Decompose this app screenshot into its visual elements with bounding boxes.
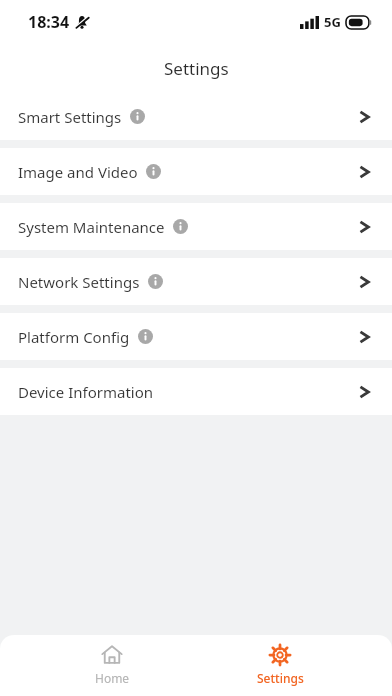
staticText: Platform Config: [18, 327, 130, 347]
staticText: Settings: [257, 670, 304, 686]
staticText: Device Information: [18, 382, 154, 402]
staticText: Home: [95, 670, 130, 686]
other: Open: [358, 163, 372, 181]
staticText: 18:34: [28, 11, 70, 33]
staticText: Settings: [164, 57, 229, 80]
button[interactable]: Platform Config: [0, 313, 392, 360]
staticText: Network Settings: [18, 272, 140, 292]
button[interactable]: System Maintenance: [0, 203, 392, 250]
other: Open: [358, 273, 372, 291]
button[interactable]: Network Settings: [0, 258, 392, 305]
other: Home: [101, 644, 123, 666]
other: Open: [358, 108, 372, 126]
staticText: System Maintenance: [18, 217, 165, 237]
other: Settings: [269, 644, 291, 666]
staticText: Smart Settings: [18, 107, 122, 127]
other: Open: [358, 218, 372, 236]
button[interactable]: Settings: [225, 635, 335, 696]
button[interactable]: Smart Settings: [0, 93, 392, 140]
other: Open: [358, 328, 372, 346]
button[interactable]: Home: [57, 635, 167, 696]
staticText: Image and Video: [18, 162, 138, 182]
button[interactable]: Image and Video: [0, 148, 392, 195]
staticText: 5G: [324, 13, 341, 31]
other: Open: [358, 383, 372, 401]
button[interactable]: Device Information: [0, 368, 392, 415]
